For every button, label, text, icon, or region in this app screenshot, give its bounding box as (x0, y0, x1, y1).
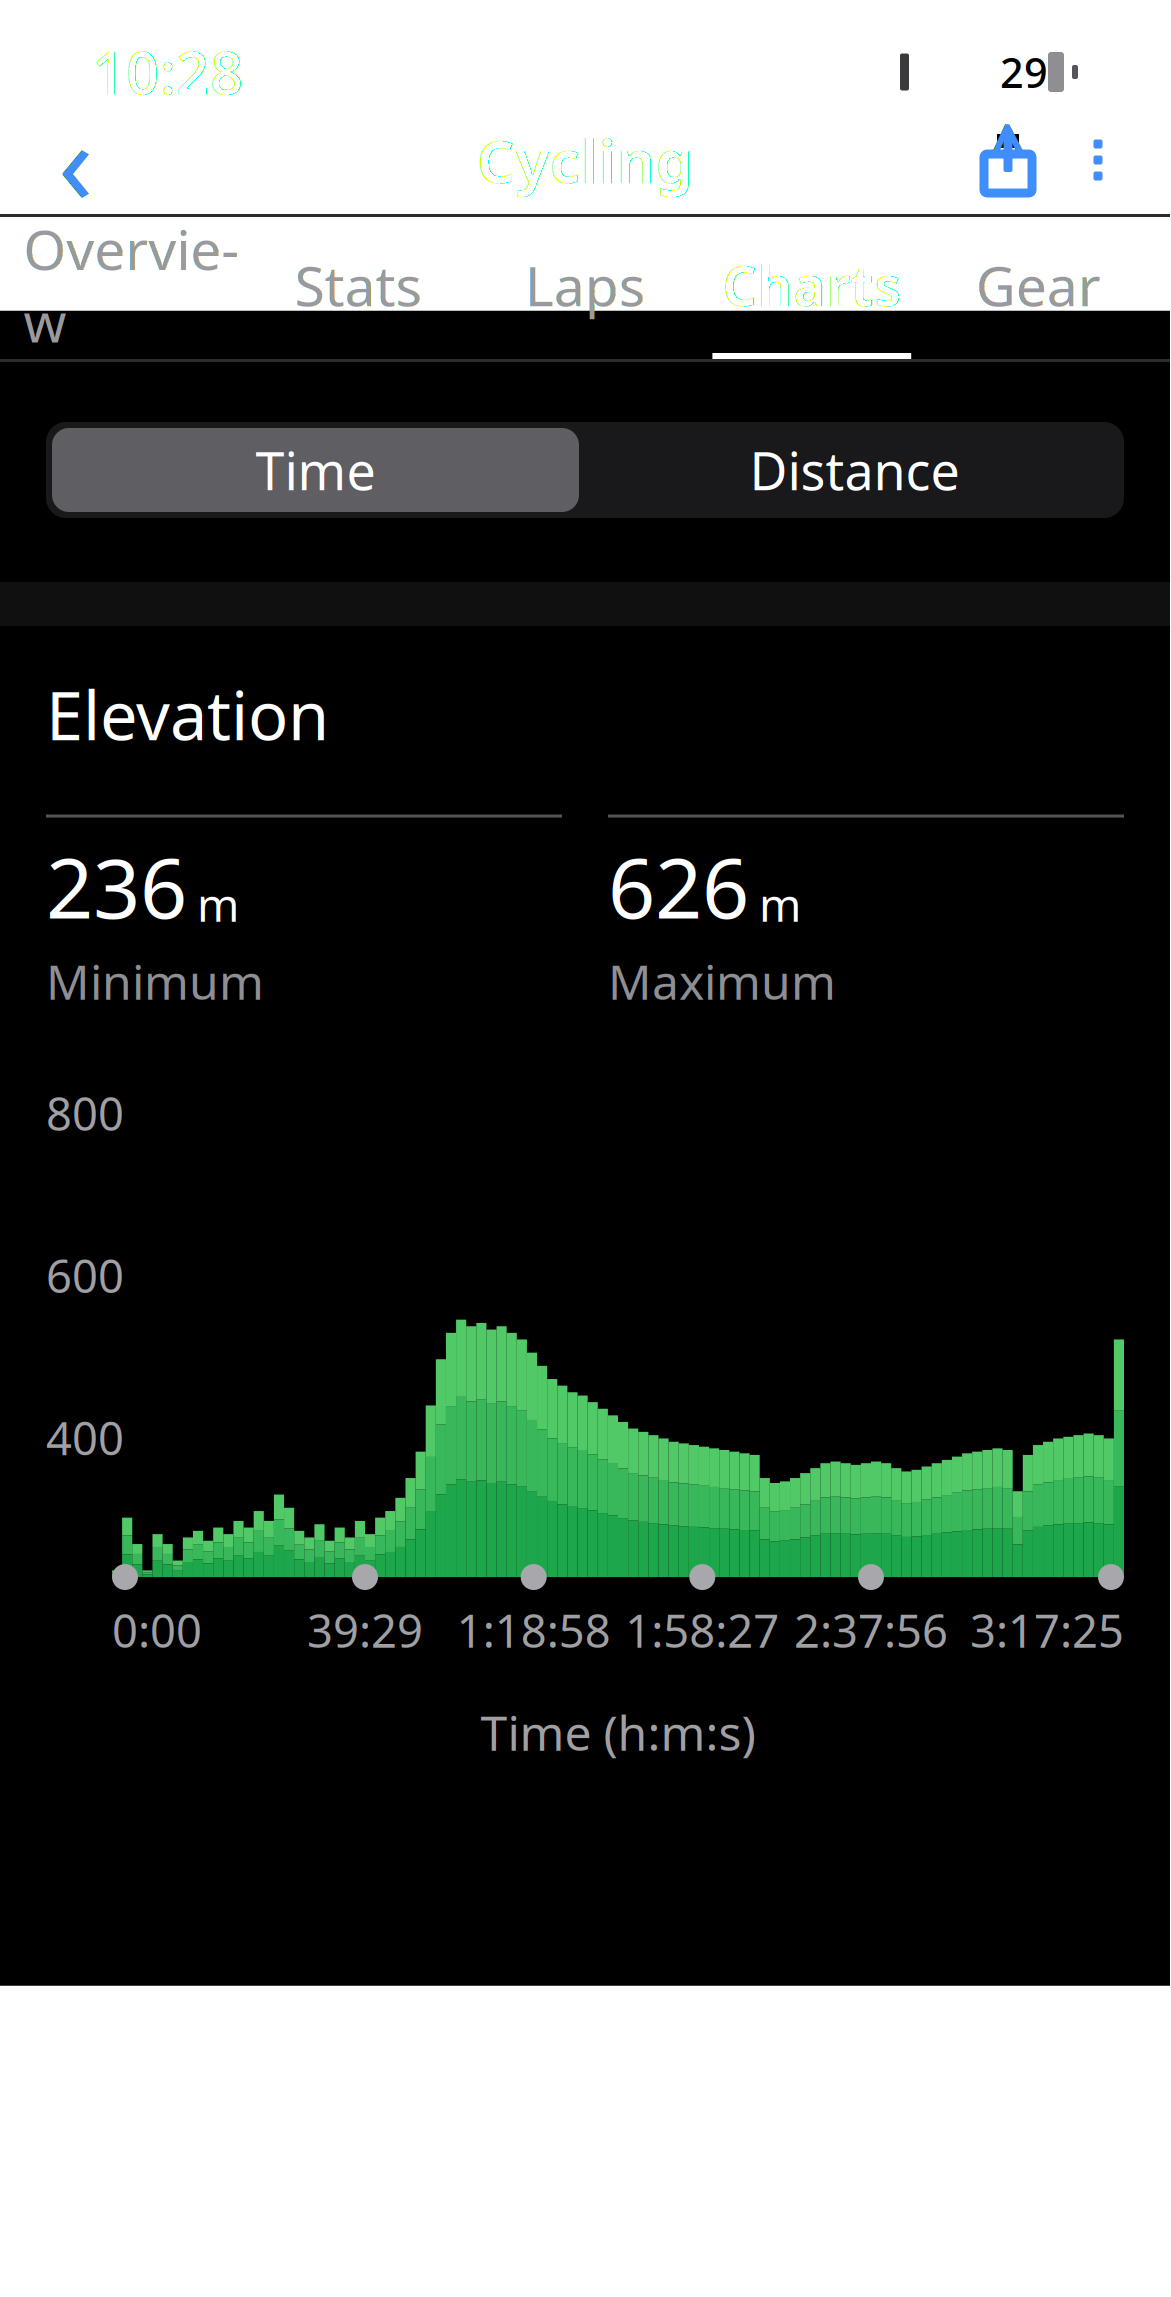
staticText: Charts (722, 249, 901, 321)
staticText: m (197, 874, 239, 934)
staticText: 236 (46, 831, 187, 941)
staticText: ^ (990, 104, 1025, 186)
button[interactable]: Gear (925, 217, 1152, 359)
staticText: Cycling (476, 120, 693, 200)
staticText: Gear (976, 249, 1101, 321)
staticText: 600 (46, 1245, 124, 1305)
staticText: 29 (1000, 45, 1048, 99)
staticText: 2:37:56 (794, 1600, 948, 1660)
staticText: 10:28 (92, 33, 244, 111)
staticText: Distance (749, 435, 959, 505)
button[interactable]: Charts (698, 217, 925, 359)
staticText: 39:29 (307, 1600, 423, 1660)
staticText: Minimum (46, 949, 264, 1013)
staticText: m (759, 874, 801, 934)
staticText: Time (h:m:s) (480, 1700, 755, 1764)
staticText: 626 (608, 831, 749, 941)
staticText: Overview (23, 212, 239, 358)
button[interactable]: Back (30, 112, 122, 208)
button[interactable]: Distance (585, 422, 1124, 518)
button[interactable]: Stats (245, 217, 472, 359)
staticText: ‹ (58, 84, 94, 236)
staticText: 1:58:27 (625, 1600, 779, 1660)
staticText: 3:17:25 (970, 1600, 1124, 1660)
button[interactable]: Time (46, 422, 585, 518)
button[interactable]: Laps (472, 217, 698, 359)
staticText: 1:18:58 (457, 1600, 611, 1660)
button[interactable]: More options (1056, 112, 1140, 208)
button[interactable]: Share (960, 112, 1056, 208)
staticText: Laps (525, 249, 645, 321)
staticText: Elevation (46, 670, 329, 758)
staticText: 400 (46, 1407, 124, 1468)
staticText: 800 (46, 1083, 124, 1143)
staticText: Time (255, 435, 375, 505)
staticText: Maximum (608, 949, 836, 1013)
button[interactable]: Overview (18, 217, 245, 359)
staticText: Stats (295, 249, 422, 321)
staticText: 0:00 (112, 1600, 202, 1660)
